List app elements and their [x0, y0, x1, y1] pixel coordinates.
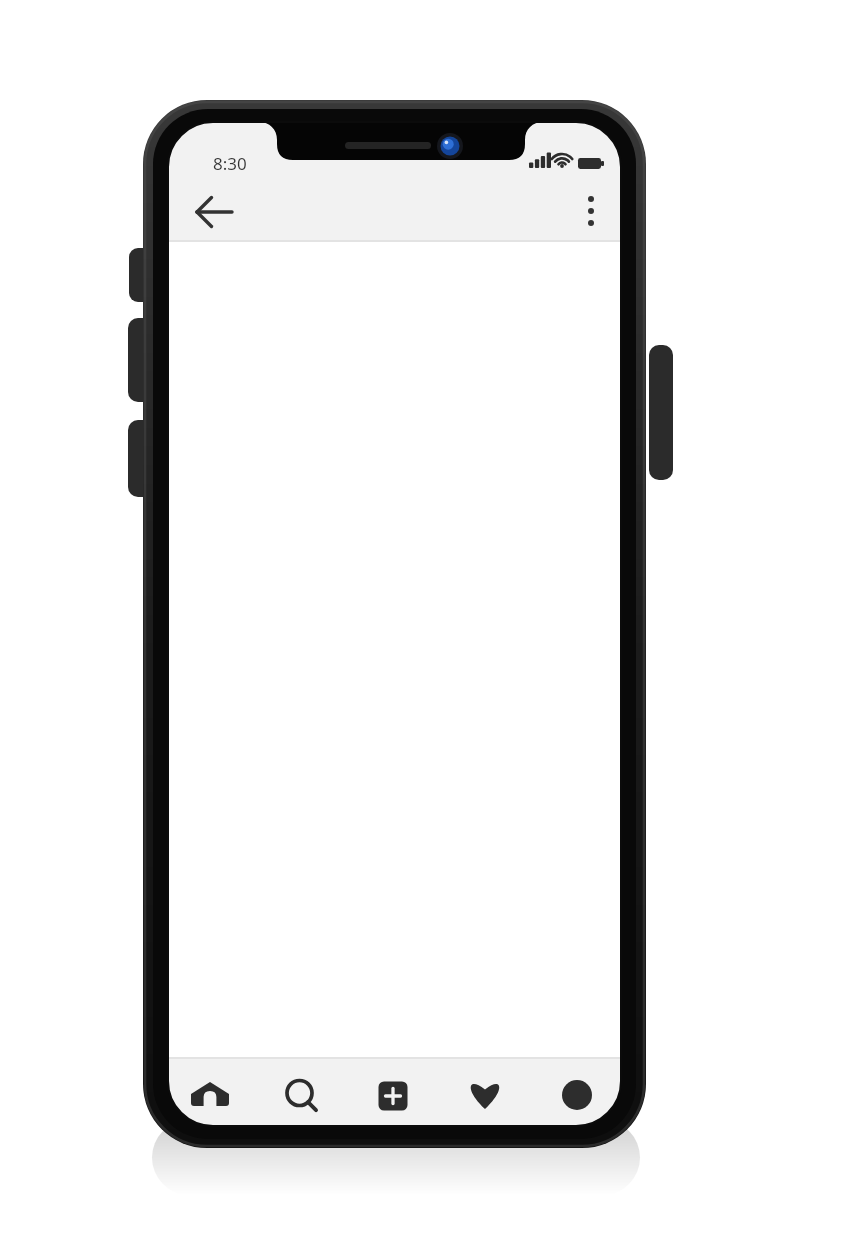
button[interactable]: Home	[167, 1062, 253, 1126]
button[interactable]: Create	[350, 1062, 436, 1126]
button[interactable]: More options	[562, 182, 620, 244]
button[interactable]: Activity	[442, 1062, 528, 1126]
button: 8:30	[213, 152, 247, 175]
staticText: 8:30	[213, 152, 247, 175]
button[interactable]: Back	[178, 182, 240, 244]
button[interactable]: Search	[258, 1062, 344, 1126]
button[interactable]: Profile	[534, 1062, 620, 1126]
